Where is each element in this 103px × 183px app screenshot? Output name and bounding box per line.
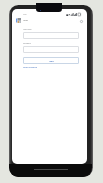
staticText: 10:31 [23, 13, 27, 15]
button[interactable]: More options [78, 18, 85, 25]
staticText: Login [23, 19, 28, 22]
staticText: Forgot Password [23, 66, 38, 68]
button[interactable]: Forgot Password [23, 66, 38, 68]
staticText: Password [23, 42, 31, 44]
button[interactable] [23, 32, 79, 39]
staticText: Username [23, 28, 32, 30]
button[interactable]: Login [23, 57, 79, 64]
staticText: Login [49, 60, 54, 62]
button[interactable] [23, 46, 79, 53]
